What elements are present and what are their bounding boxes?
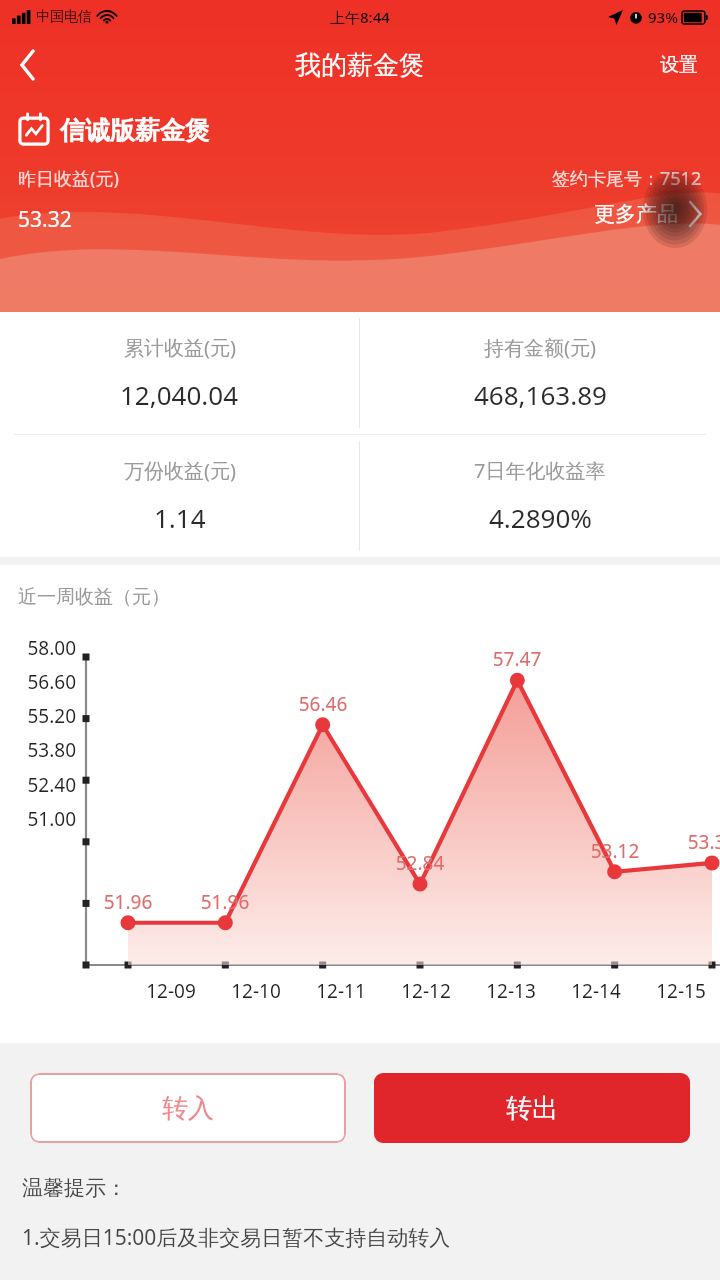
button[interactable]: 累计收益(元): [0, 312, 359, 434]
staticText: 12-14: [553, 978, 639, 1004]
button[interactable]: 返回: [0, 37, 56, 93]
staticText: 468,163.89: [474, 377, 607, 412]
staticText: 12-12: [383, 978, 469, 1004]
button[interactable]: 设置: [638, 41, 720, 89]
staticText: 53.12: [572, 838, 658, 864]
staticText: 53.80: [8, 737, 76, 763]
staticText: 昨日收益(元): [18, 166, 119, 191]
staticText: 12-10: [213, 978, 299, 1004]
staticText: 52.40: [8, 772, 76, 798]
staticText: 累计收益(元): [124, 334, 236, 361]
staticText: 1.交易日15:00后及非交易日暂不支持自动转入: [22, 1223, 451, 1252]
button[interactable]: 转入: [30, 1073, 346, 1143]
button[interactable]: 转出: [374, 1073, 690, 1143]
button[interactable]: 持有金额(元): [360, 312, 720, 434]
staticText: 12-15: [638, 978, 720, 1004]
staticText: 转出: [506, 1092, 558, 1125]
staticText: 56.46: [280, 691, 366, 717]
button[interactable]: 更多产品: [594, 201, 702, 227]
staticText: 上午8:44: [330, 7, 390, 27]
staticText: 53.32: [669, 829, 720, 855]
staticText: 53.32: [18, 205, 72, 234]
staticText: 万份收益(元): [124, 457, 236, 484]
staticText: 设置: [660, 53, 698, 77]
staticText: 转入: [162, 1092, 214, 1125]
staticText: 信诚版薪金煲: [60, 115, 210, 146]
staticText: 12,040.04: [120, 377, 239, 412]
staticText: 51.96: [85, 889, 171, 915]
staticText: 12-09: [128, 978, 214, 1004]
staticText: 1.14: [154, 500, 206, 535]
button[interactable]: 万份收益(元): [0, 435, 359, 557]
staticText: 7日年化收益率: [474, 457, 606, 484]
staticText: 4.2890%: [489, 500, 592, 535]
staticText: 温馨提示：: [22, 1175, 127, 1201]
staticText: 中国电信: [36, 8, 92, 26]
staticText: 12-11: [298, 978, 384, 1004]
button[interactable]: 7日年化收益率: [360, 435, 720, 557]
staticText: 93%: [648, 7, 678, 27]
staticText: 12-13: [468, 978, 554, 1004]
staticText: 52.84: [377, 850, 463, 876]
staticText: 56.60: [8, 669, 76, 695]
staticText: 近一周收益（元）: [18, 585, 170, 609]
staticText: 签约卡尾号：7512: [552, 166, 702, 191]
staticText: 持有金额(元): [484, 334, 596, 361]
staticText: 更多产品: [594, 201, 678, 227]
staticText: 51.00: [8, 806, 76, 832]
staticText: 55.20: [8, 703, 76, 729]
staticText: 我的薪金煲: [295, 49, 425, 82]
staticText: 58.00: [8, 635, 76, 661]
staticText: 51.96: [182, 889, 268, 915]
staticText: 57.47: [474, 646, 560, 672]
